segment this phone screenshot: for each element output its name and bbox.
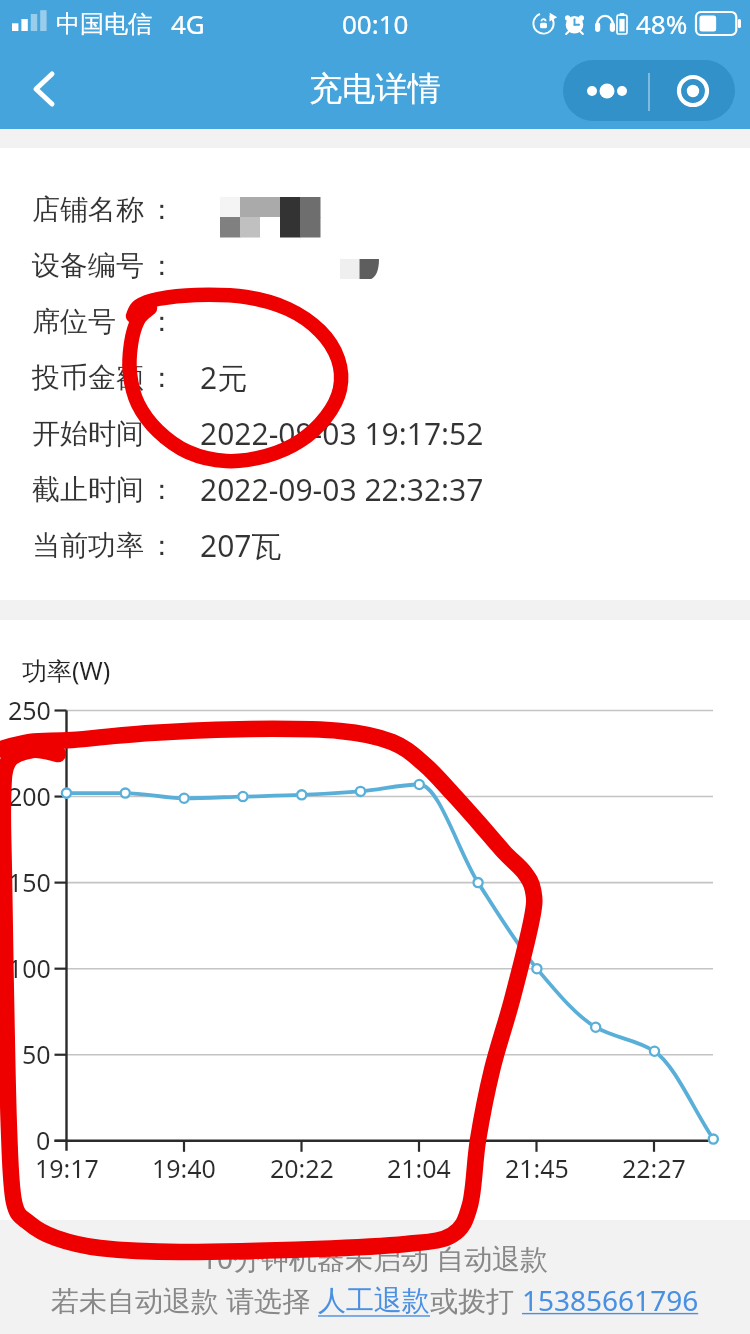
staticText: 150: [8, 865, 51, 899]
button[interactable]: 席位号: [0, 293, 750, 349]
staticText: 21:04: [387, 1151, 451, 1185]
staticText: 席位号: [32, 304, 116, 339]
staticText: ：: [148, 472, 176, 507]
staticText: ：: [148, 304, 176, 339]
staticText: 0: [36, 1123, 51, 1157]
staticText: 充电详情: [309, 68, 441, 110]
staticText: 21:45: [505, 1151, 569, 1185]
staticText: 若未自动退款 请选择: [51, 1281, 318, 1319]
staticText: 200: [8, 779, 51, 813]
button[interactable]: 截止时间: [0, 461, 750, 517]
staticText: ：: [148, 248, 176, 283]
staticText: 207瓦: [200, 525, 282, 566]
staticText: 19:17: [35, 1151, 99, 1185]
button[interactable]: 店铺名称: [0, 181, 750, 237]
staticText: 投币金额: [32, 360, 144, 395]
button[interactable]: 更多: [563, 60, 650, 121]
staticText: 或拨打: [430, 1281, 522, 1319]
staticText: 100: [8, 951, 51, 985]
staticText: 48%: [636, 6, 688, 41]
staticText: 中国电信: [56, 9, 152, 39]
staticText: 00:10: [342, 6, 409, 41]
button[interactable]: 投币金额: [0, 349, 750, 405]
button[interactable]: 开始时间: [0, 405, 750, 461]
button[interactable]: 返回: [0, 48, 88, 129]
staticText: ：: [148, 416, 176, 451]
staticText: 店铺名称: [32, 192, 144, 227]
staticText: 19:40: [152, 1151, 216, 1185]
button[interactable]: 设备编号: [0, 237, 750, 293]
staticText: 4G: [171, 6, 205, 41]
button[interactable]: 当前功率: [0, 517, 750, 573]
staticText: 22:27: [622, 1151, 686, 1185]
staticText: 2元: [200, 357, 248, 398]
button[interactable]: 15385661796: [522, 1281, 699, 1319]
staticText: 50: [22, 1037, 51, 1071]
button[interactable]: 人工退款: [318, 1283, 430, 1318]
staticText: 功率(W): [22, 653, 111, 687]
staticText: ：: [148, 360, 176, 395]
staticText: 当前功率: [32, 528, 144, 563]
staticText: 开始时间: [32, 416, 144, 451]
button[interactable]: 关闭小程序: [650, 60, 735, 121]
staticText: ：: [148, 528, 176, 563]
staticText: 2022-09-03 22:32:37: [200, 469, 484, 510]
staticText: 设备编号: [32, 248, 144, 283]
staticText: ：: [148, 192, 176, 227]
staticText: 2022-09-03 19:17:52: [200, 413, 484, 454]
staticText: 20:22: [270, 1151, 334, 1185]
staticText: 250: [8, 693, 51, 727]
staticText: 截止时间: [32, 472, 144, 507]
staticText: 10分钟机器未启动 自动退款: [201, 1239, 549, 1277]
